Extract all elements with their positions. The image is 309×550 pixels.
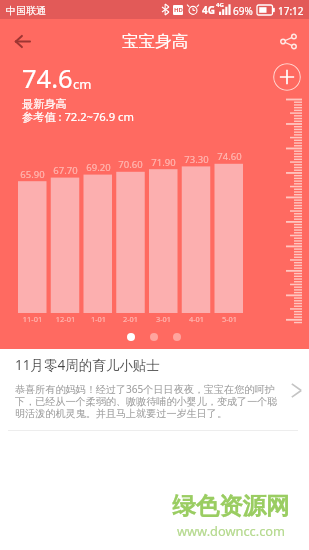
staticText: 参考值 : 72.2~76.9 cm (22, 109, 134, 124)
staticText: 74.60 (215, 150, 244, 163)
button[interactable]: Add height record (273, 63, 301, 91)
staticText: 69% (233, 4, 253, 18)
staticText: 宝宝身高 (122, 31, 188, 52)
staticText: cm (73, 75, 92, 93)
staticText: 中国联通 (6, 4, 46, 17)
button[interactable]: Share (267, 21, 309, 62)
staticText: 4G (202, 3, 215, 17)
staticText: 恭喜所有的妈妈！经过了365个日日夜夜，宝宝在您的呵护下，已经从一个柔弱的、嗷嗷… (15, 382, 283, 420)
staticText: 最新身高 (22, 97, 67, 111)
staticText: 69.20 (84, 161, 113, 174)
button[interactable]: Page 1 (127, 333, 135, 341)
staticText: 绿色资源网 (172, 491, 290, 521)
button[interactable]: 11月零4周的育儿小贴士 (0, 349, 309, 430)
staticText: 70.60 (116, 158, 145, 171)
button[interactable]: Page 2 (150, 333, 158, 341)
staticText: 1-01 (84, 314, 113, 324)
staticText: HD (174, 6, 183, 14)
staticText: 17:12 (278, 4, 304, 18)
button[interactable]: Back (0, 21, 44, 62)
staticText: 74.6 (22, 61, 73, 96)
staticText: 67.70 (51, 164, 80, 177)
staticText: 73.30 (182, 153, 211, 166)
staticText: 2-01 (116, 314, 145, 324)
staticText: 4G (216, 1, 224, 9)
staticText: 11月零4周的育儿小贴士 (15, 356, 160, 374)
button[interactable]: Page 3 (173, 333, 181, 341)
staticText: 4-01 (182, 314, 211, 324)
staticText: 11-01 (18, 314, 47, 324)
staticText: 5-01 (215, 314, 244, 324)
staticText: 3-01 (149, 314, 178, 324)
staticText: www.downcc.com (177, 522, 285, 539)
staticText: 71.90 (149, 156, 178, 169)
staticText: 65.90 (18, 168, 47, 181)
staticText: 12-01 (51, 314, 80, 324)
